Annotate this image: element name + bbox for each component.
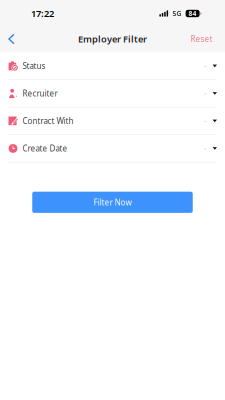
button[interactable]: Reset (184, 26, 219, 51)
staticText: Status (22, 61, 45, 71)
staticText: - (204, 61, 207, 71)
staticText: 17:22 (31, 7, 54, 20)
staticText: Contract With (22, 116, 73, 126)
button[interactable]: Status (0, 52, 225, 80)
button[interactable]: Contract With (0, 107, 225, 135)
staticText: Filter Now (93, 197, 131, 208)
button[interactable]: Create Date (0, 135, 225, 162)
button[interactable]: Back (0, 26, 22, 51)
staticText: - (204, 116, 207, 126)
staticText: Recruiter (22, 88, 57, 99)
staticText: Employer Filter (78, 33, 147, 45)
staticText: 5G (172, 9, 181, 18)
staticText: - (204, 88, 207, 99)
button[interactable]: Recruiter (0, 80, 225, 107)
staticText: Reset (190, 34, 212, 44)
staticText: - (204, 143, 207, 154)
staticText: 84 (189, 9, 197, 18)
staticText: Create Date (22, 143, 67, 154)
button[interactable]: Filter Now (32, 192, 193, 213)
